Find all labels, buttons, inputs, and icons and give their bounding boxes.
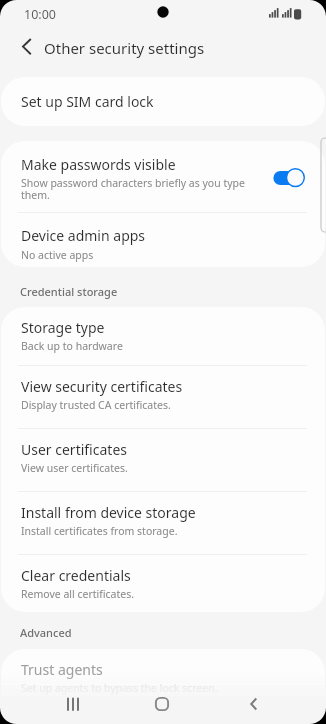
staticText: 10:00 — [24, 6, 56, 23]
staticText: Device admin apps — [21, 226, 146, 245]
button[interactable]: Make passwords visible — [1, 141, 325, 212]
staticText: Back up to hardware — [21, 339, 123, 353]
button[interactable]: Device admin apps — [1, 213, 325, 267]
staticText: Remove all certificates. — [21, 587, 135, 601]
button[interactable]: Storage type — [1, 307, 325, 365]
staticText: Advanced — [20, 625, 72, 640]
button[interactable] — [228, 689, 280, 719]
button[interactable] — [0, 30, 40, 66]
button[interactable]: Install from device storage — [1, 492, 325, 554]
staticText: Set up agents to bypass the lock screen. — [21, 681, 218, 695]
staticText: Credential storage — [20, 284, 118, 299]
button[interactable] — [136, 689, 188, 719]
staticText: Other security settings — [44, 38, 205, 58]
button[interactable]: Set up SIM card lock — [1, 77, 325, 126]
staticText: Set up SIM card lock — [21, 92, 154, 111]
button[interactable]: Trust agents — [1, 649, 325, 724]
staticText: Trust agents — [21, 660, 103, 679]
staticText: Clear credentials — [21, 566, 131, 585]
button[interactable]: View security certificates — [1, 366, 325, 428]
staticText: View security certificates — [21, 377, 183, 396]
button[interactable]: User certificates — [1, 429, 325, 491]
staticText: Install from device storage — [21, 503, 196, 522]
staticText: Storage type — [21, 318, 105, 337]
staticText: Make passwords visible — [21, 155, 176, 174]
staticText: Show password characters briefly as you … — [21, 176, 245, 202]
staticText: Display trusted CA certificates. — [21, 398, 171, 412]
button[interactable]: Clear credentials — [1, 555, 325, 612]
button[interactable] — [47, 689, 99, 719]
staticText: Install certificates from storage. — [21, 524, 178, 538]
staticText: View user certificates. — [21, 461, 128, 475]
staticText: User certificates — [21, 440, 127, 459]
staticText: No active apps — [21, 248, 94, 262]
